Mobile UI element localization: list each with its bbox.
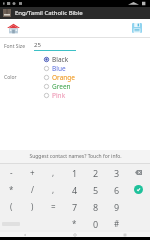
staticText: 4 xyxy=(72,184,78,196)
button[interactable]: Eng/Tamil Catholic Bible xyxy=(0,7,150,19)
staticText: 9 xyxy=(114,201,120,213)
button[interactable]: Home xyxy=(50,232,100,237)
button[interactable]: 8 xyxy=(85,198,106,215)
button[interactable]: 6 xyxy=(106,181,127,198)
button[interactable]: Space xyxy=(0,215,22,232)
button[interactable]: Suggest contact names? Touch for info. xyxy=(0,150,150,163)
button[interactable]: Orange xyxy=(44,73,100,82)
staticText: , xyxy=(52,167,55,178)
button[interactable]: Back xyxy=(0,232,50,237)
staticText: ) xyxy=(31,201,34,212)
button[interactable]: # xyxy=(106,215,127,232)
button[interactable]: * xyxy=(0,181,22,198)
staticText: - xyxy=(10,167,13,178)
button[interactable]: ( xyxy=(0,198,22,215)
staticText: # xyxy=(114,218,120,229)
button[interactable]: ) xyxy=(22,198,43,215)
staticText: 8 xyxy=(93,201,99,213)
staticText: , xyxy=(52,184,55,195)
staticText: 2 xyxy=(93,167,99,179)
staticText: 25 xyxy=(34,41,41,49)
staticText: ( xyxy=(10,201,13,212)
staticText: Color xyxy=(4,74,17,81)
button[interactable]: - xyxy=(0,164,22,181)
button[interactable]: , xyxy=(43,164,64,181)
button[interactable]: Pink xyxy=(44,91,100,100)
button[interactable]: Black xyxy=(44,55,100,64)
button[interactable]: 25 xyxy=(34,41,76,51)
staticText: * xyxy=(72,218,77,229)
staticText: 1 xyxy=(72,167,78,179)
button[interactable]: 2 xyxy=(85,164,106,181)
button[interactable]: 1 xyxy=(64,164,85,181)
staticText: Eng/Tamil Catholic Bible xyxy=(15,9,83,17)
button[interactable]: Blue xyxy=(44,64,100,73)
staticText: Black xyxy=(52,55,69,64)
button[interactable]: 0 xyxy=(85,215,106,232)
button[interactable]: Green xyxy=(44,82,100,91)
button[interactable]: * xyxy=(64,215,85,232)
button[interactable]: , xyxy=(43,181,64,198)
button[interactable]: + xyxy=(22,164,43,181)
button[interactable]: 4 xyxy=(64,181,85,198)
staticText: Blue xyxy=(52,64,66,73)
staticText: 3 xyxy=(114,167,120,179)
button[interactable]: Backspace xyxy=(127,164,150,181)
staticText: Green xyxy=(52,82,71,91)
button[interactable]: 7 xyxy=(64,198,85,215)
staticText: 0 xyxy=(93,218,99,230)
staticText: Font Size xyxy=(4,43,26,50)
button[interactable]: 3 xyxy=(106,164,127,181)
button[interactable]: = xyxy=(43,198,64,215)
staticText: Suggest contact names? Touch for info. xyxy=(29,153,122,160)
staticText: 7 xyxy=(72,201,78,213)
button[interactable]: Recents xyxy=(100,232,150,237)
button[interactable]: / xyxy=(22,181,43,198)
staticText: + xyxy=(30,167,35,178)
button[interactable]: Done xyxy=(127,181,150,198)
button[interactable]: Save xyxy=(124,19,150,37)
button[interactable]: 5 xyxy=(85,181,106,198)
staticText: / xyxy=(31,184,34,195)
staticText: = xyxy=(51,201,56,212)
staticText: 5 xyxy=(93,184,99,196)
staticText: * xyxy=(9,184,14,195)
staticText: Pink xyxy=(52,91,66,100)
button[interactable]: Home xyxy=(0,19,26,37)
staticText: 6 xyxy=(114,184,120,196)
button[interactable]: 9 xyxy=(106,198,127,215)
staticText: Orange xyxy=(52,73,75,82)
